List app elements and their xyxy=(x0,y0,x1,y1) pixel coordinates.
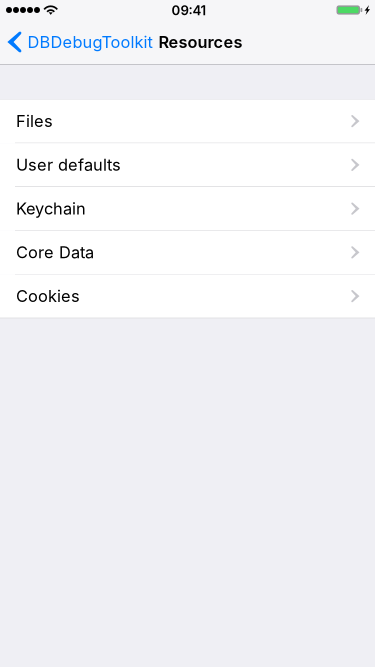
button[interactable]: User defaults xyxy=(0,143,375,187)
button[interactable]: Core Data xyxy=(0,231,375,275)
staticText: User defaults xyxy=(16,155,121,175)
button[interactable]: Cookies xyxy=(0,274,375,318)
staticText: Keychain xyxy=(16,199,86,219)
staticText: Files xyxy=(16,111,53,131)
staticText: DBDebugToolkit xyxy=(27,32,152,52)
button[interactable]: Keychain xyxy=(0,187,375,231)
staticText: Core Data xyxy=(16,242,94,262)
staticText: Resources xyxy=(158,32,242,52)
staticText: 09:41 xyxy=(171,2,206,19)
staticText: Cookies xyxy=(16,286,80,306)
button[interactable]: DBDebugToolkit xyxy=(0,20,158,64)
button[interactable]: Files xyxy=(0,99,375,143)
